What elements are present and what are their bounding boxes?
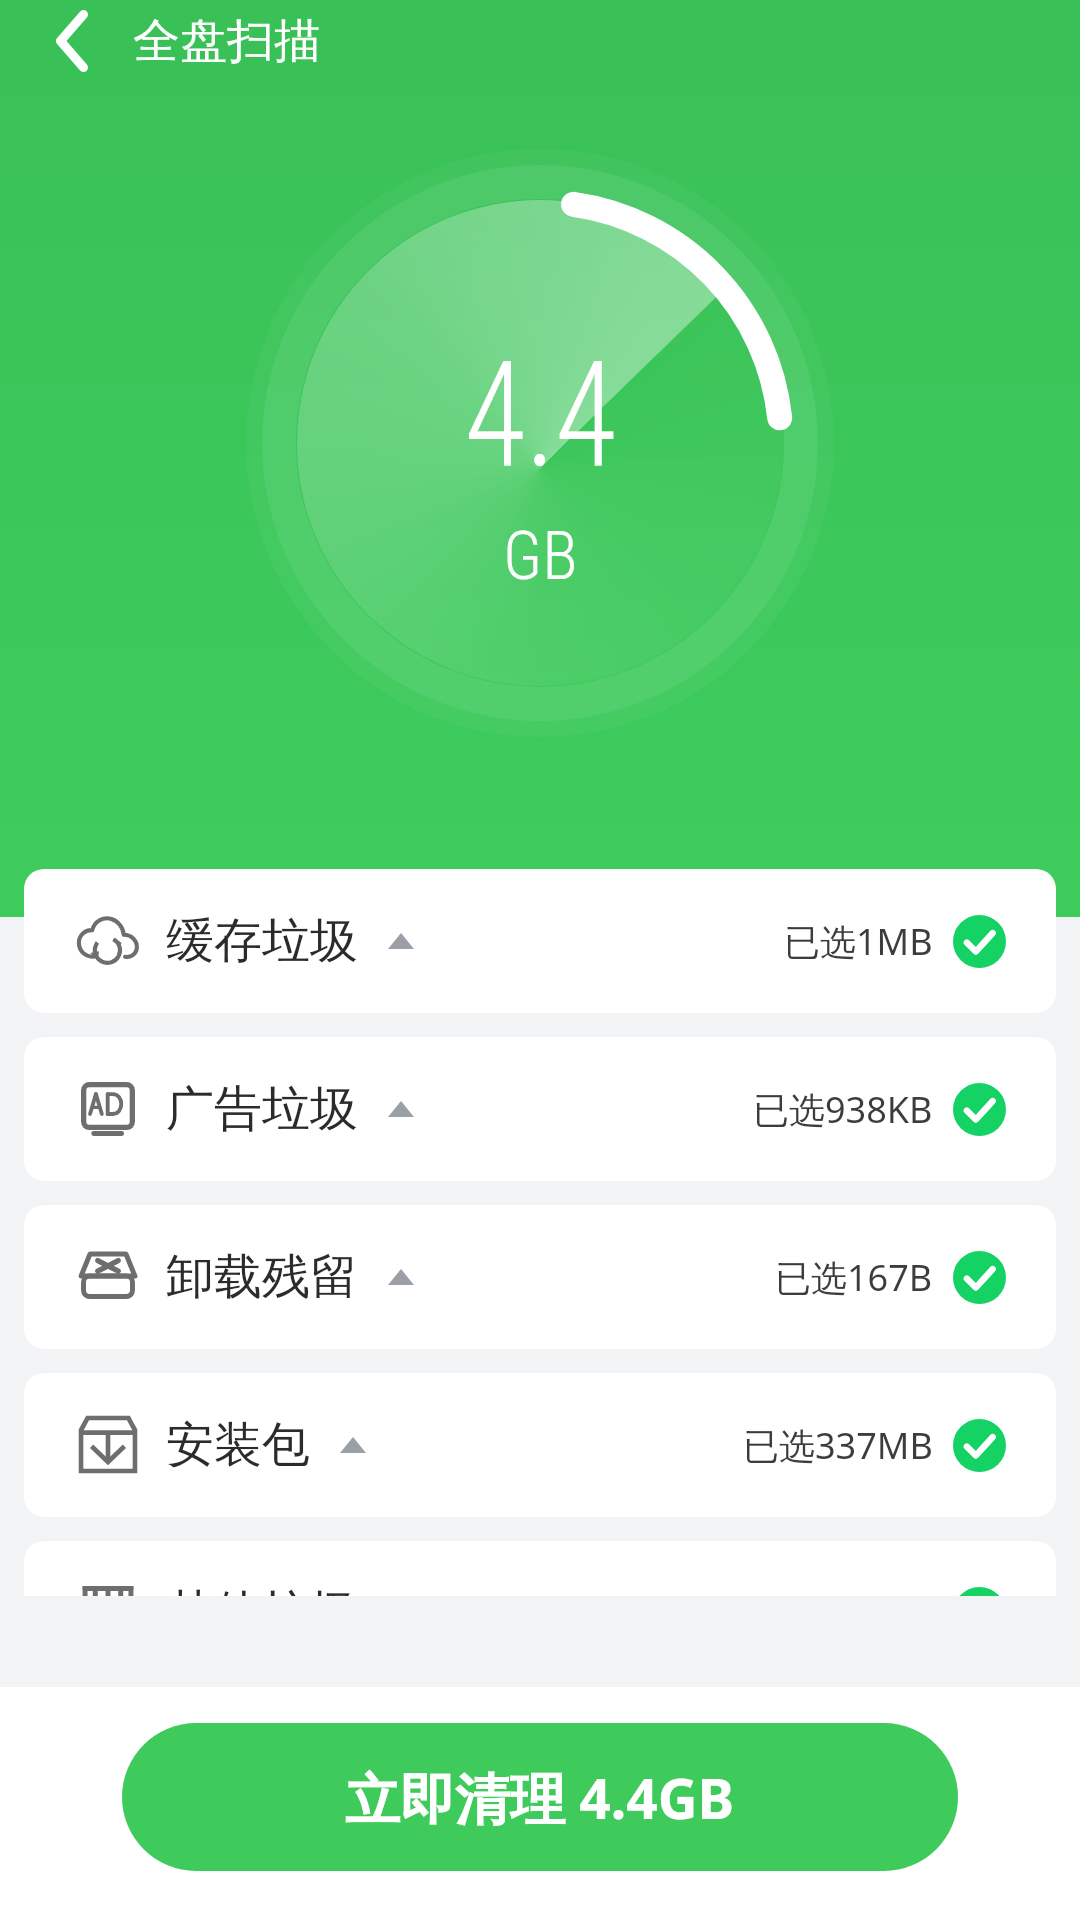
staticText: 已选1MB [784,917,933,966]
staticText: 缓存垃圾 [166,911,358,971]
staticText: 已选938KB [753,1085,933,1134]
staticText: 全盘扫描 [133,12,321,71]
staticText: 立即清理 4.4GB [345,1760,735,1835]
staticText: 卸载残留 [166,1247,358,1307]
staticText: 其他垃圾 [166,1583,358,1596]
button[interactable]: 广告垃圾 [24,1037,1056,1181]
button[interactable]: 立即清理 4.4GB [122,1723,958,1871]
button[interactable]: 其他垃圾 [24,1541,1056,1596]
staticText: 安装包 [166,1415,310,1475]
staticText: 广告垃圾 [166,1079,358,1139]
button[interactable]: Back [0,0,133,82]
staticText: 已选337MB [743,1421,933,1470]
staticText: 已选167B [775,1253,933,1302]
button[interactable]: 缓存垃圾 [24,869,1056,1013]
staticText: 4.4 [464,330,617,501]
button[interactable]: 卸载残留 [24,1205,1056,1349]
staticText: GB [503,518,578,595]
button[interactable]: 安装包 [24,1373,1056,1517]
